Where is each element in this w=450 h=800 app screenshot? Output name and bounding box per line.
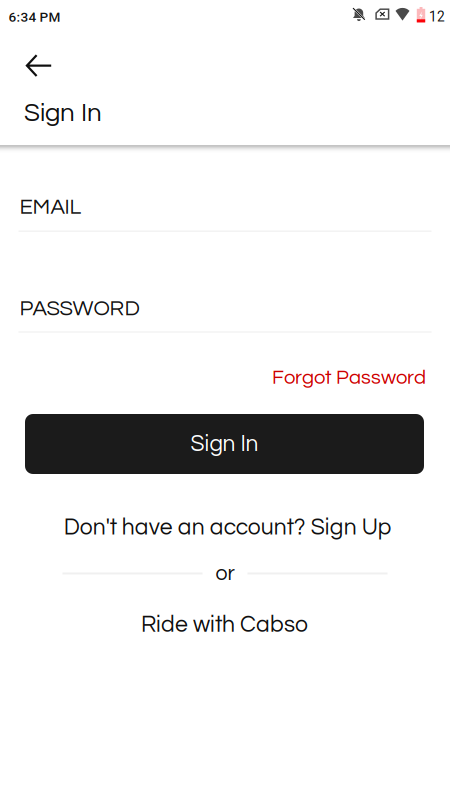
button[interactable]: Sign In	[0, 95, 122, 131]
button[interactable]: Ride with Cabso	[137, 609, 312, 641]
button[interactable]: EMAIL	[18, 188, 431, 232]
staticText: 12	[429, 9, 445, 25]
button[interactable]: Forgot Password	[268, 363, 430, 392]
button[interactable]: Don't have an account? Sign Up	[60, 512, 396, 543]
staticText: EMAIL	[20, 196, 82, 218]
staticText: 6:34 PM	[8, 9, 60, 25]
staticText: Ride with Cabso	[141, 613, 308, 637]
button[interactable]: Sign In	[25, 414, 424, 474]
button[interactable]: PASSWORD	[18, 290, 431, 333]
staticText: or	[215, 562, 234, 584]
staticText: Don't have an account? Sign Up	[64, 516, 392, 539]
staticText: Forgot Password	[272, 367, 426, 388]
staticText: PASSWORD	[20, 297, 140, 320]
button[interactable]: Back	[0, 40, 72, 91]
staticText: Sign In	[24, 100, 102, 126]
staticText: Sign In	[190, 432, 258, 456]
